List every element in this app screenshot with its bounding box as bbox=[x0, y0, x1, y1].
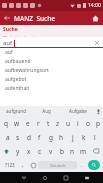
button[interactable]: b bbox=[56, 144, 67, 158]
staticText: v bbox=[49, 147, 53, 156]
button[interactable]: q bbox=[0, 116, 11, 130]
staticText: ?123 bbox=[5, 162, 15, 168]
staticText: . bbox=[81, 162, 83, 169]
staticText: z bbox=[56, 119, 60, 128]
staticText: l bbox=[94, 133, 96, 142]
staticText: g bbox=[49, 133, 53, 142]
button[interactable]: aufbewahrungsort bbox=[0, 66, 103, 75]
staticText: auf bbox=[5, 49, 13, 56]
button[interactable]: k bbox=[78, 130, 89, 144]
staticText: aufgrund bbox=[6, 108, 26, 114]
button[interactable]: z bbox=[53, 116, 63, 130]
staticText: i bbox=[77, 119, 79, 128]
button[interactable]: d bbox=[23, 130, 34, 144]
button[interactable]: u bbox=[63, 116, 73, 130]
button[interactable]: y bbox=[13, 144, 23, 158]
staticText: a bbox=[6, 133, 10, 142]
staticText: t bbox=[47, 119, 50, 128]
button[interactable]: Aufgabe bbox=[62, 106, 93, 116]
button[interactable]: Back bbox=[13, 172, 34, 183]
staticText: Aug bbox=[42, 108, 51, 114]
staticText: 14:00 bbox=[88, 2, 101, 9]
button[interactable]: auf bbox=[0, 48, 103, 57]
button[interactable]: Aug bbox=[31, 106, 62, 116]
staticText: Deutsch bbox=[50, 163, 66, 168]
staticText: b bbox=[60, 147, 64, 156]
staticText: aufbauend bbox=[5, 58, 31, 65]
staticText: Aufgabe bbox=[69, 108, 87, 114]
button[interactable]: j bbox=[67, 130, 78, 144]
button[interactable]: aufbauend bbox=[0, 57, 103, 66]
staticText: aufbewahrungsort bbox=[5, 67, 49, 74]
button[interactable]: Emoji bbox=[28, 158, 38, 172]
staticText: Werke durchsuchen bbox=[3, 35, 41, 37]
button[interactable]: , bbox=[18, 158, 28, 172]
button[interactable]: a bbox=[3, 130, 13, 144]
button[interactable]: v bbox=[45, 144, 56, 158]
staticText: u bbox=[66, 119, 71, 128]
staticText: o bbox=[86, 119, 90, 128]
staticText: , bbox=[22, 162, 24, 169]
button[interactable]: r bbox=[33, 116, 43, 130]
button[interactable]: aufgrund bbox=[0, 106, 31, 116]
button[interactable]: w bbox=[11, 116, 22, 130]
staticText: auf bbox=[3, 39, 13, 47]
button[interactable]: Deutsch bbox=[38, 161, 77, 169]
button[interactable]: e bbox=[22, 116, 33, 130]
button[interactable]: aufenthalt bbox=[0, 84, 103, 93]
staticText: q bbox=[4, 119, 8, 128]
staticText: n bbox=[70, 147, 75, 156]
button[interactable]: Switch keyboard bbox=[76, 172, 97, 183]
staticText: y bbox=[16, 147, 20, 156]
button[interactable]: s bbox=[13, 130, 23, 144]
staticText: aufenthalt bbox=[5, 85, 30, 92]
staticText: r bbox=[37, 119, 40, 128]
button[interactable]: Backspace bbox=[89, 144, 103, 158]
button[interactable]: o bbox=[83, 116, 93, 130]
button[interactable]: n bbox=[67, 144, 78, 158]
button[interactable]: Search bbox=[88, 160, 100, 170]
staticText: x bbox=[27, 147, 31, 156]
staticText: h bbox=[59, 133, 64, 142]
button[interactable]: f bbox=[34, 130, 45, 144]
staticText: f bbox=[38, 133, 41, 142]
staticText: w bbox=[14, 119, 20, 128]
button[interactable]: . bbox=[77, 158, 86, 172]
button[interactable]: aufgebot bbox=[0, 75, 103, 84]
button[interactable]: i bbox=[73, 116, 83, 130]
button[interactable]: c bbox=[34, 144, 45, 158]
button[interactable]: Shift bbox=[0, 144, 13, 158]
staticText: m bbox=[80, 147, 87, 156]
button[interactable]: x bbox=[23, 144, 34, 158]
button[interactable]: m bbox=[78, 144, 89, 158]
staticText: aufgebot bbox=[5, 76, 27, 83]
staticText: p bbox=[96, 119, 100, 128]
staticText: c bbox=[38, 147, 42, 156]
button[interactable]: l bbox=[89, 130, 100, 144]
staticText: k bbox=[82, 133, 86, 142]
staticText: Suche bbox=[3, 26, 18, 33]
button[interactable]: t bbox=[43, 116, 53, 130]
button[interactable]: Recent apps bbox=[55, 172, 76, 183]
button[interactable]: ?123 bbox=[1, 158, 18, 172]
button[interactable]: Clear search bbox=[92, 38, 101, 47]
button[interactable]: Voice input bbox=[93, 106, 103, 116]
button[interactable]: Home bbox=[89, 12, 101, 24]
staticText: j bbox=[72, 133, 74, 142]
button[interactable]: Home bbox=[34, 172, 55, 183]
staticText: d bbox=[27, 133, 31, 142]
staticText: e bbox=[26, 119, 30, 128]
staticText: MANZ Suche bbox=[14, 14, 56, 23]
button[interactable]: h bbox=[56, 130, 67, 144]
button[interactable]: p bbox=[93, 116, 103, 130]
button[interactable]: Back bbox=[1, 12, 13, 24]
staticText: s bbox=[16, 133, 20, 142]
button[interactable]: g bbox=[45, 130, 56, 144]
